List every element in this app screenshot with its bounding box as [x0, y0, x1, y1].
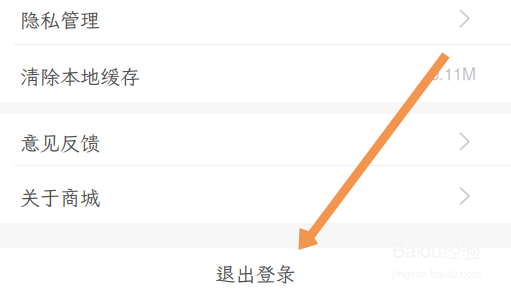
staticText: 0.11M — [430, 61, 476, 85]
staticText: 隐私管理 — [20, 7, 100, 33]
button[interactable]: 隐私管理 — [0, 0, 511, 45]
staticText: jingyan.baidu.com — [392, 265, 481, 281]
staticText: 清除本地缓存 — [20, 63, 140, 90]
button[interactable]: 退出登录 — [0, 248, 511, 294]
staticText: Baidu经验 — [392, 235, 482, 264]
button[interactable]: 关于商城 — [0, 166, 511, 223]
staticText: 退出登录 — [215, 261, 295, 287]
button[interactable]: 意见反馈 — [0, 114, 511, 166]
staticText: 关于商城 — [20, 184, 100, 211]
button[interactable]: 清除本地缓存 — [0, 45, 511, 102]
staticText: 意见反馈 — [20, 130, 100, 156]
